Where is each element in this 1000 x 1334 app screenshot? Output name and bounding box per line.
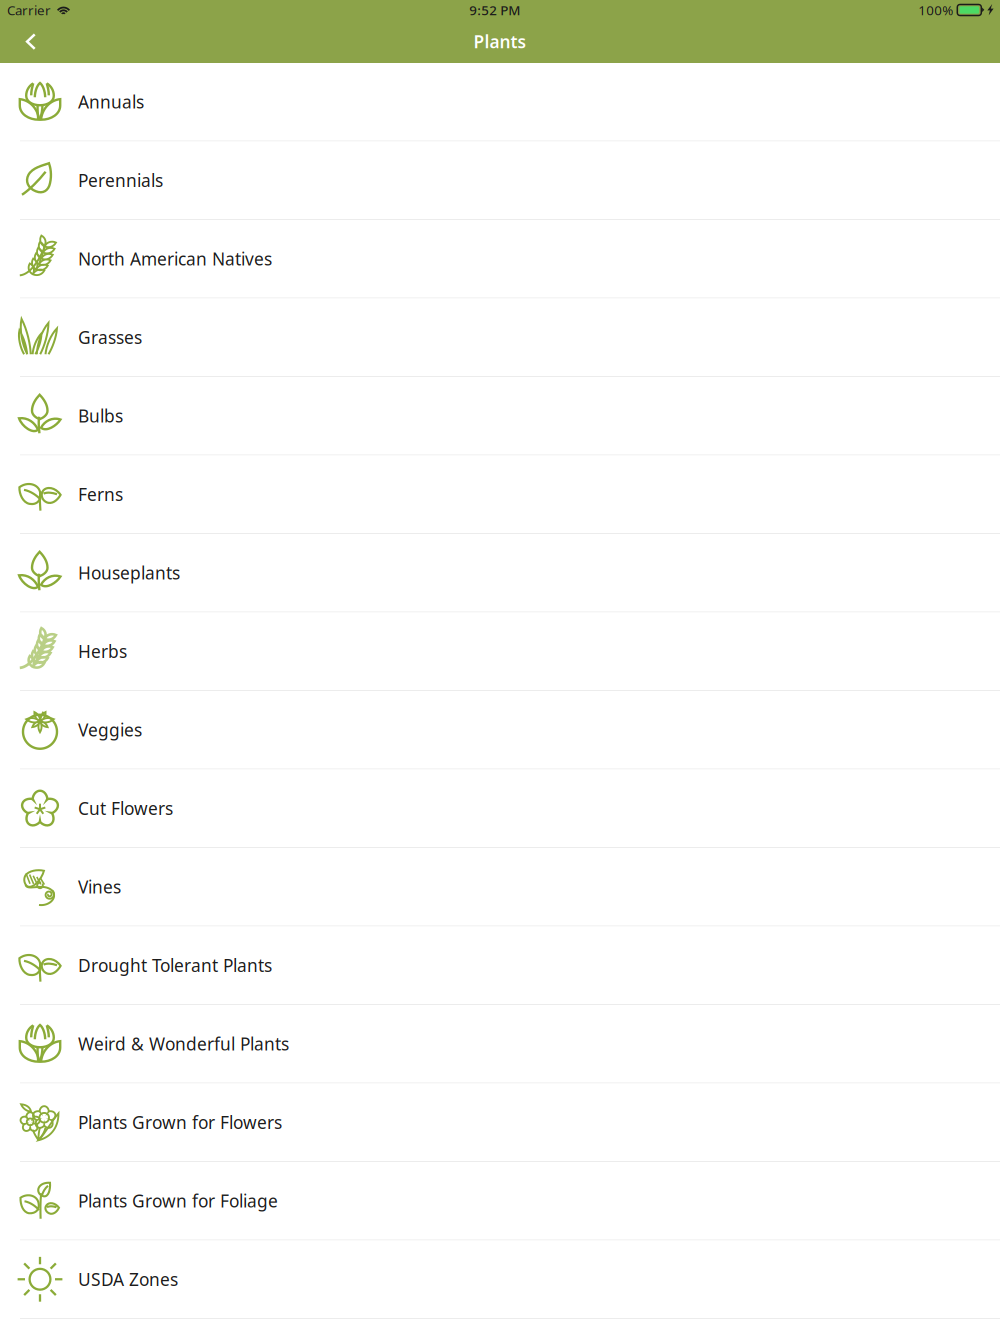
button[interactable]: Herbs	[0, 612, 1000, 691]
staticText: Carrier	[7, 1, 51, 19]
staticText: Plants	[473, 30, 526, 53]
staticText: 100%	[918, 1, 953, 19]
staticText: Vines	[78, 875, 121, 898]
button[interactable]: Plants Grown for Flowers	[0, 1083, 1000, 1162]
staticText: Drought Tolerant Plants	[78, 954, 272, 977]
button[interactable]: Bulbs	[0, 377, 1000, 455]
button[interactable]: Vines	[0, 848, 1000, 926]
button[interactable]: Back	[9, 20, 53, 63]
staticText: Plants Grown for Flowers	[78, 1111, 282, 1134]
staticText: Perennials	[78, 169, 163, 192]
staticText: Weird & Wonderful Plants	[78, 1032, 289, 1055]
staticText: 9:52 PM	[469, 1, 520, 19]
staticText: Cut Flowers	[78, 797, 173, 820]
button[interactable]: USDA Zones	[0, 1240, 1000, 1319]
staticText: Bulbs	[78, 404, 123, 427]
button[interactable]: Perennials	[0, 141, 1000, 220]
staticText: Herbs	[78, 640, 127, 663]
button[interactable]: Weird & Wonderful Plants	[0, 1005, 1000, 1083]
staticText: North American Natives	[78, 247, 272, 270]
staticText: Veggies	[78, 718, 142, 741]
button[interactable]: Plants Grown for Foliage	[0, 1162, 1000, 1240]
button[interactable]: Houseplants	[0, 534, 1000, 612]
button[interactable]: Drought Tolerant Plants	[0, 926, 1000, 1005]
staticText: Grasses	[78, 326, 142, 349]
button[interactable]: Grasses	[0, 298, 1000, 377]
staticText: Plants Grown for Foliage	[78, 1189, 278, 1212]
button[interactable]: North American Natives	[0, 220, 1000, 298]
staticText: Annuals	[78, 90, 144, 113]
staticText: Ferns	[78, 483, 123, 506]
button[interactable]: Cut Flowers	[0, 769, 1000, 848]
button[interactable]: Veggies	[0, 691, 1000, 769]
staticText: Houseplants	[78, 561, 180, 584]
button[interactable]: Ferns	[0, 455, 1000, 534]
staticText: USDA Zones	[78, 1268, 178, 1291]
button[interactable]: Annuals	[0, 63, 1000, 141]
